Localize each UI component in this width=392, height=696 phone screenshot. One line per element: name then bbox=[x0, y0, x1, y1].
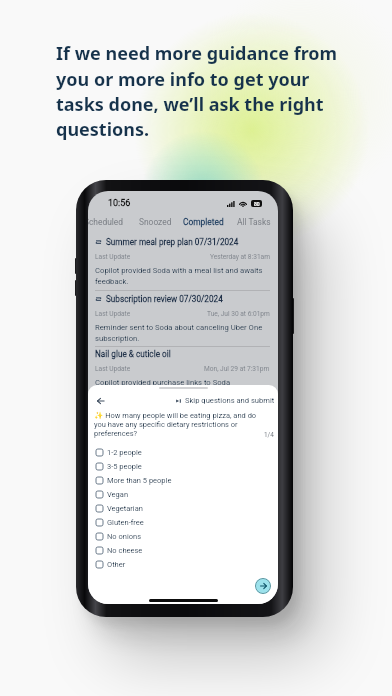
staticText: Reminder sent to Soda about canceling Ub… bbox=[95, 323, 270, 343]
staticText: 80 bbox=[254, 201, 260, 207]
button[interactable]: All Tasks bbox=[237, 213, 271, 231]
button[interactable]: Skip questions and submit bbox=[176, 394, 275, 407]
staticText: No onions bbox=[107, 532, 142, 541]
button[interactable]: Other bbox=[88, 557, 278, 571]
staticText: 3-5 people bbox=[107, 462, 142, 471]
staticText: Snoozed bbox=[139, 217, 172, 227]
staticText: Yesterday at 8:31am bbox=[210, 253, 270, 261]
button[interactable]: Vegetarian bbox=[88, 501, 278, 515]
button[interactable]: 3-5 people bbox=[88, 459, 278, 473]
staticText: More than 5 people bbox=[107, 476, 172, 485]
staticText: Last Update bbox=[95, 310, 131, 318]
staticText: If we need more guidance from you or mor… bbox=[56, 41, 352, 141]
button[interactable]: Summer meal prep plan 07/31/2024 bbox=[88, 235, 278, 292]
button[interactable]: Next question bbox=[255, 578, 271, 594]
staticText: Vegan bbox=[107, 490, 129, 499]
staticText: Tue, Jul 30 at 6:01pm bbox=[207, 310, 270, 318]
button[interactable]: No onions bbox=[88, 529, 278, 543]
button[interactable]: No cheese bbox=[88, 543, 278, 557]
staticText: Copilot provided Soda with a meal list a… bbox=[95, 266, 270, 286]
button[interactable]: More than 5 people bbox=[88, 473, 278, 487]
button[interactable]: Snoozed bbox=[139, 213, 172, 231]
button[interactable]: Gluten-free bbox=[88, 515, 278, 529]
staticText: ✨ How many people will be eating pizza, … bbox=[94, 411, 264, 438]
staticText: Nail glue & cuticle oil bbox=[95, 349, 171, 359]
button[interactable]: Nail glue & cuticle oil bbox=[88, 347, 278, 403]
staticText: Vegetarian bbox=[107, 504, 143, 513]
staticText: Gluten-free bbox=[107, 518, 144, 527]
staticText: Completed bbox=[183, 217, 224, 227]
button[interactable]: Scheduled bbox=[88, 213, 124, 231]
button[interactable]: Back bbox=[94, 394, 107, 407]
button[interactable]: 1-2 people bbox=[88, 445, 278, 459]
staticText: Mon, Jul 29 at 7:31pm bbox=[204, 365, 270, 373]
button[interactable]: Subscription review 07/30/2024 bbox=[88, 292, 278, 348]
staticText: Scheduled bbox=[88, 217, 124, 227]
staticText: Last Update bbox=[95, 253, 131, 261]
staticText: Other bbox=[107, 560, 126, 569]
staticText: Subscription review 07/30/2024 bbox=[106, 294, 223, 304]
staticText: Skip questions and submit bbox=[185, 396, 275, 405]
button[interactable]: Completed bbox=[183, 213, 224, 231]
staticText: 10:56 bbox=[108, 198, 131, 209]
staticText: Last Update bbox=[95, 365, 131, 373]
button[interactable]: Vegan bbox=[88, 487, 278, 501]
staticText: All Tasks bbox=[237, 217, 271, 227]
staticText: No cheese bbox=[107, 546, 143, 555]
staticText: Copilot provided purchase links to Soda bbox=[95, 378, 270, 387]
staticText: Summer meal prep plan 07/31/2024 bbox=[106, 237, 239, 247]
staticText: 1/4 bbox=[264, 431, 274, 439]
staticText: 1-2 people bbox=[107, 448, 142, 457]
